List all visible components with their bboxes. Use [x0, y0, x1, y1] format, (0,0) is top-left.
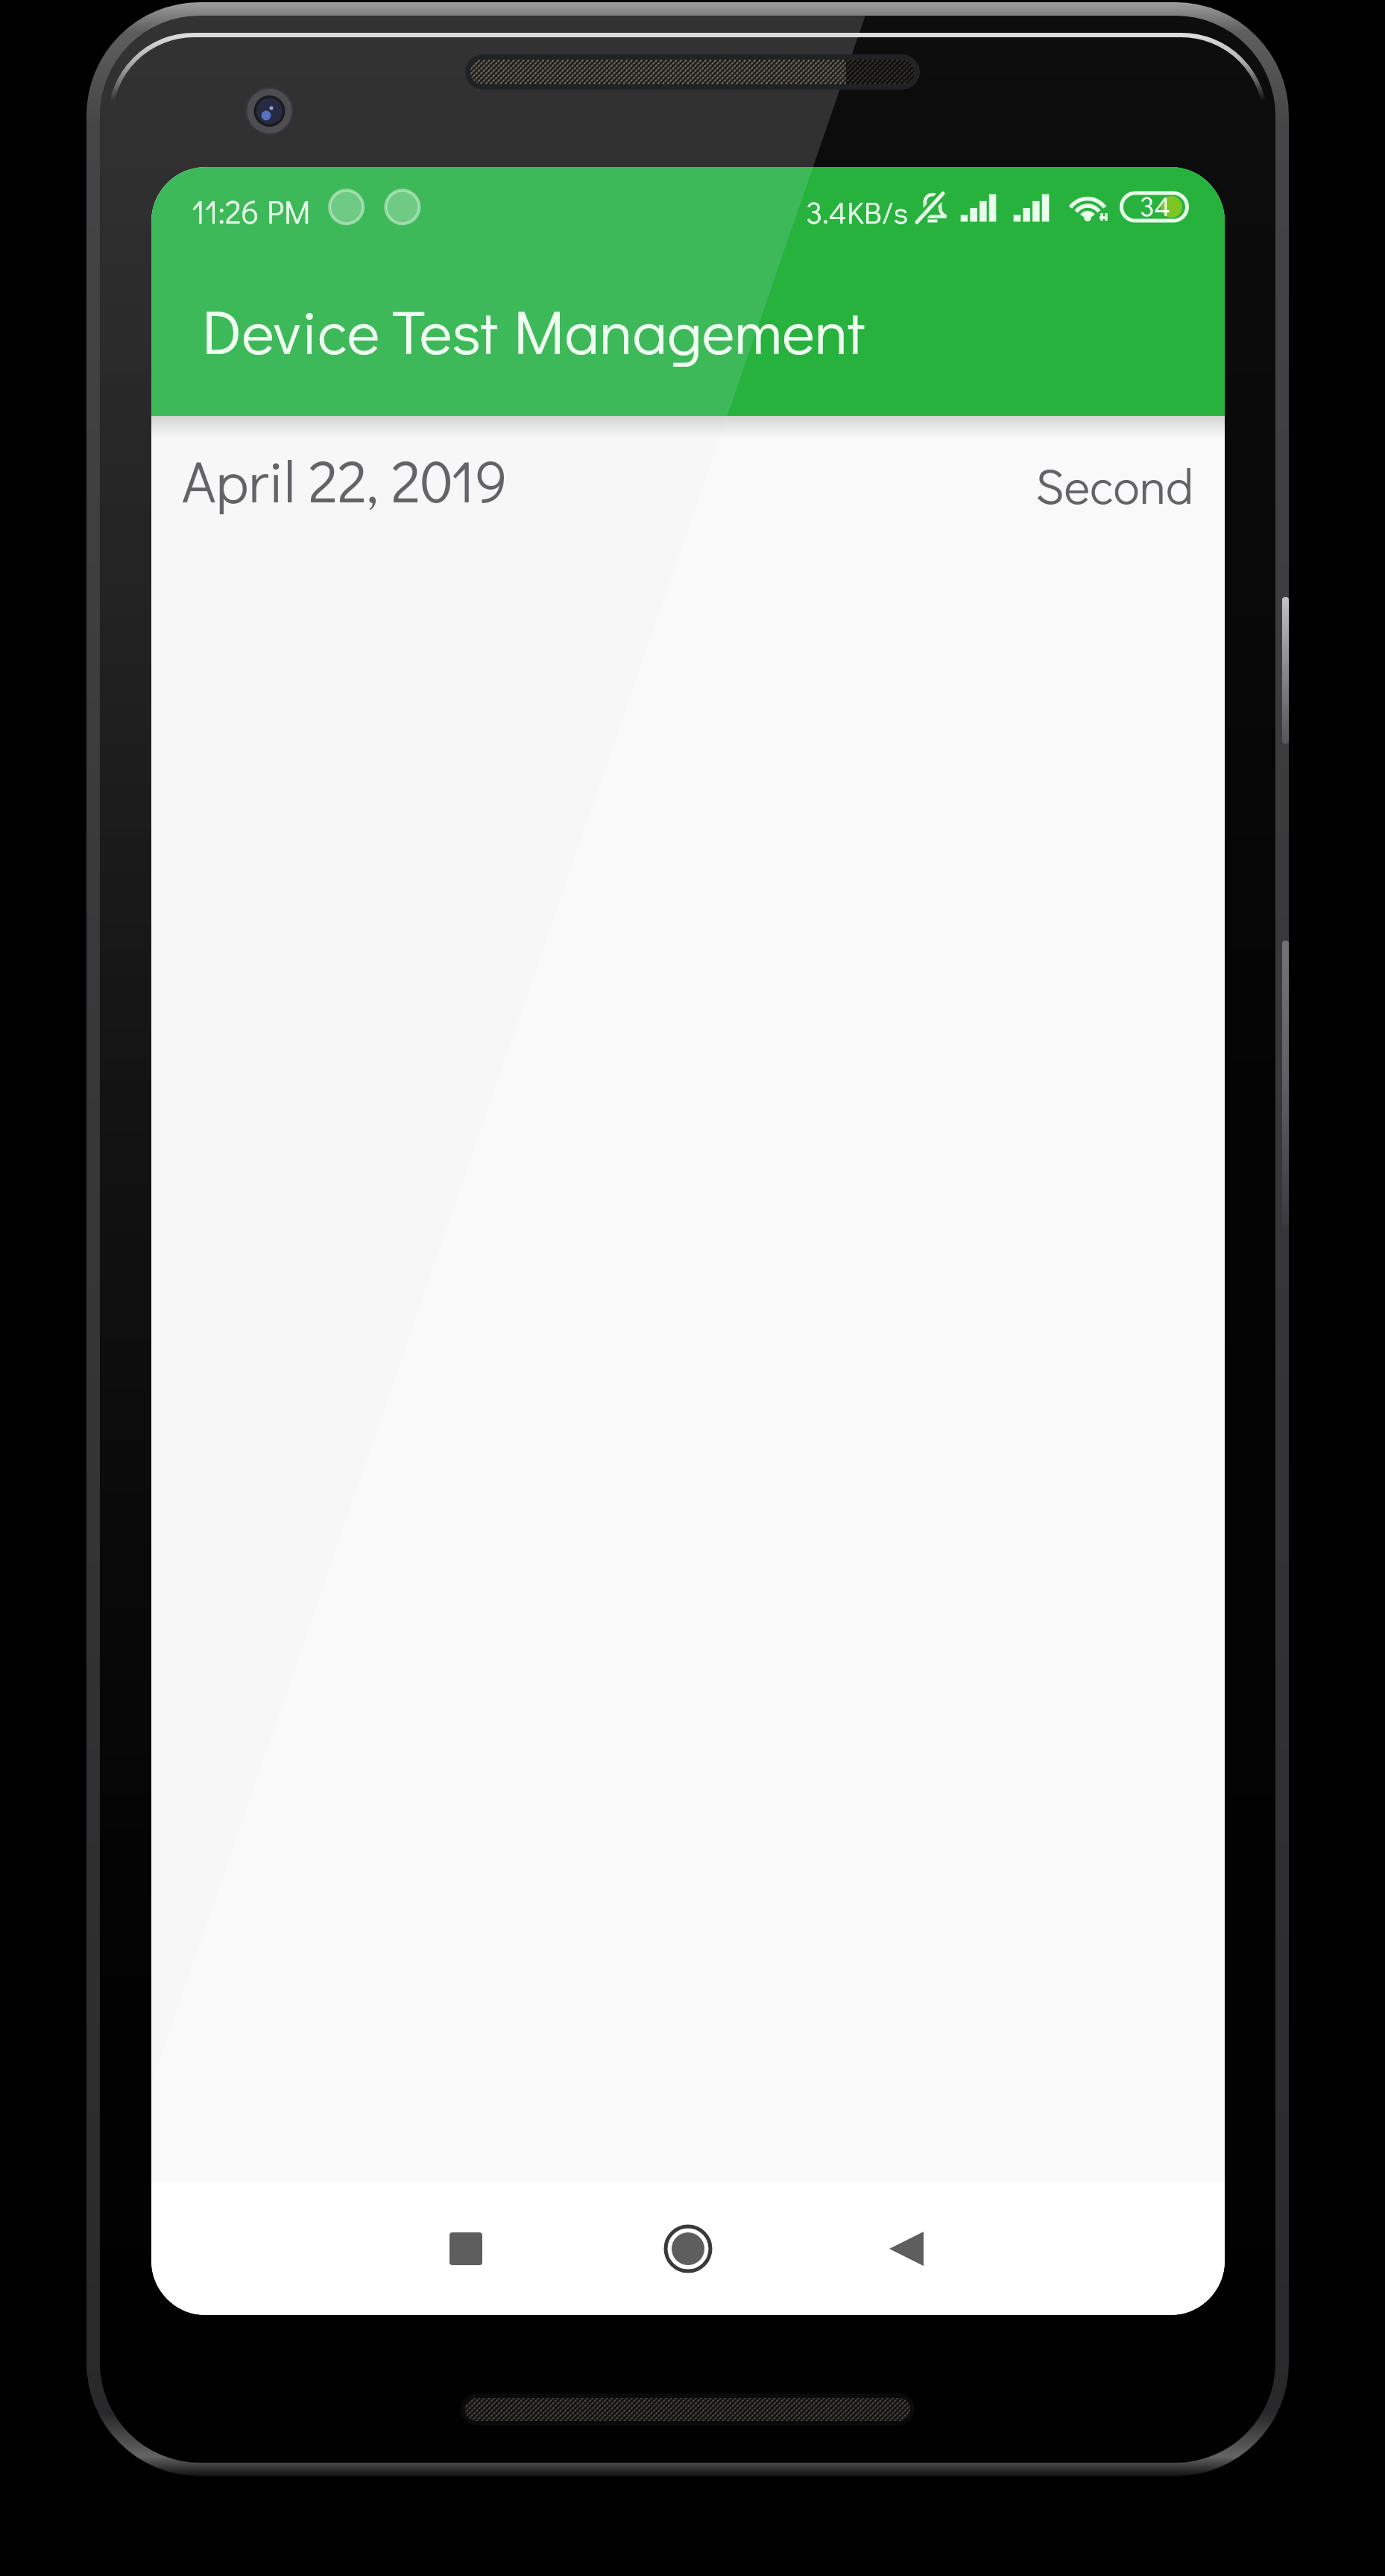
button[interactable]: Home: [625, 2185, 751, 2312]
staticText: April 22, 2019: [182, 441, 508, 517]
staticText: Device: [202, 289, 380, 370]
staticText: 11:26: [192, 190, 259, 232]
button[interactable]: Back: [847, 2185, 974, 2312]
staticText: Test: [392, 289, 498, 370]
staticText: Management: [514, 289, 865, 370]
staticText: 34: [1140, 187, 1170, 224]
button[interactable]: Recent apps: [403, 2185, 529, 2312]
button[interactable]: April 22, 2019: [151, 416, 1225, 535]
staticText: PM: [267, 190, 311, 232]
staticText: 3.4KB/s: [806, 191, 909, 232]
staticText: Second: [1035, 452, 1194, 517]
